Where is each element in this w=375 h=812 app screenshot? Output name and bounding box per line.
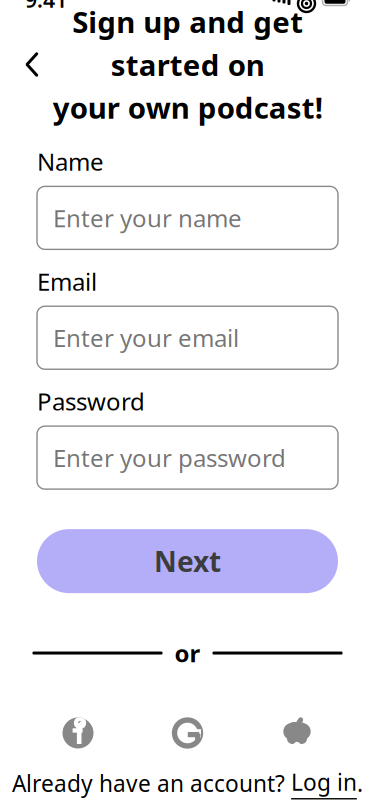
staticText: Enter your email (53, 322, 239, 354)
staticText: Name (37, 145, 104, 177)
staticText: Enter your password (53, 442, 286, 474)
button[interactable]: Continue with Facebook (52, 707, 104, 759)
button[interactable]: Next (37, 529, 338, 593)
staticText: Password (37, 385, 145, 417)
staticText: 9:41 (25, 0, 67, 14)
staticText: Already have an account? (12, 768, 291, 798)
button[interactable]: Continue with Apple (271, 707, 323, 759)
staticText: Email (37, 265, 97, 297)
button[interactable]: Enter your password (37, 426, 338, 489)
staticText: . (357, 768, 363, 798)
button[interactable]: Back (10, 42, 54, 86)
button[interactable]: Enter your email (37, 306, 338, 369)
staticText: Next (154, 542, 221, 580)
button[interactable]: Enter your name (37, 186, 338, 249)
button[interactable]: Log in (291, 767, 357, 799)
button[interactable]: Continue with Google (161, 707, 213, 759)
staticText: or (174, 637, 200, 669)
staticText: Enter your name (53, 202, 242, 234)
staticText: Sign up and get started on your own podc… (52, 2, 322, 127)
staticText: Log in (291, 767, 357, 797)
